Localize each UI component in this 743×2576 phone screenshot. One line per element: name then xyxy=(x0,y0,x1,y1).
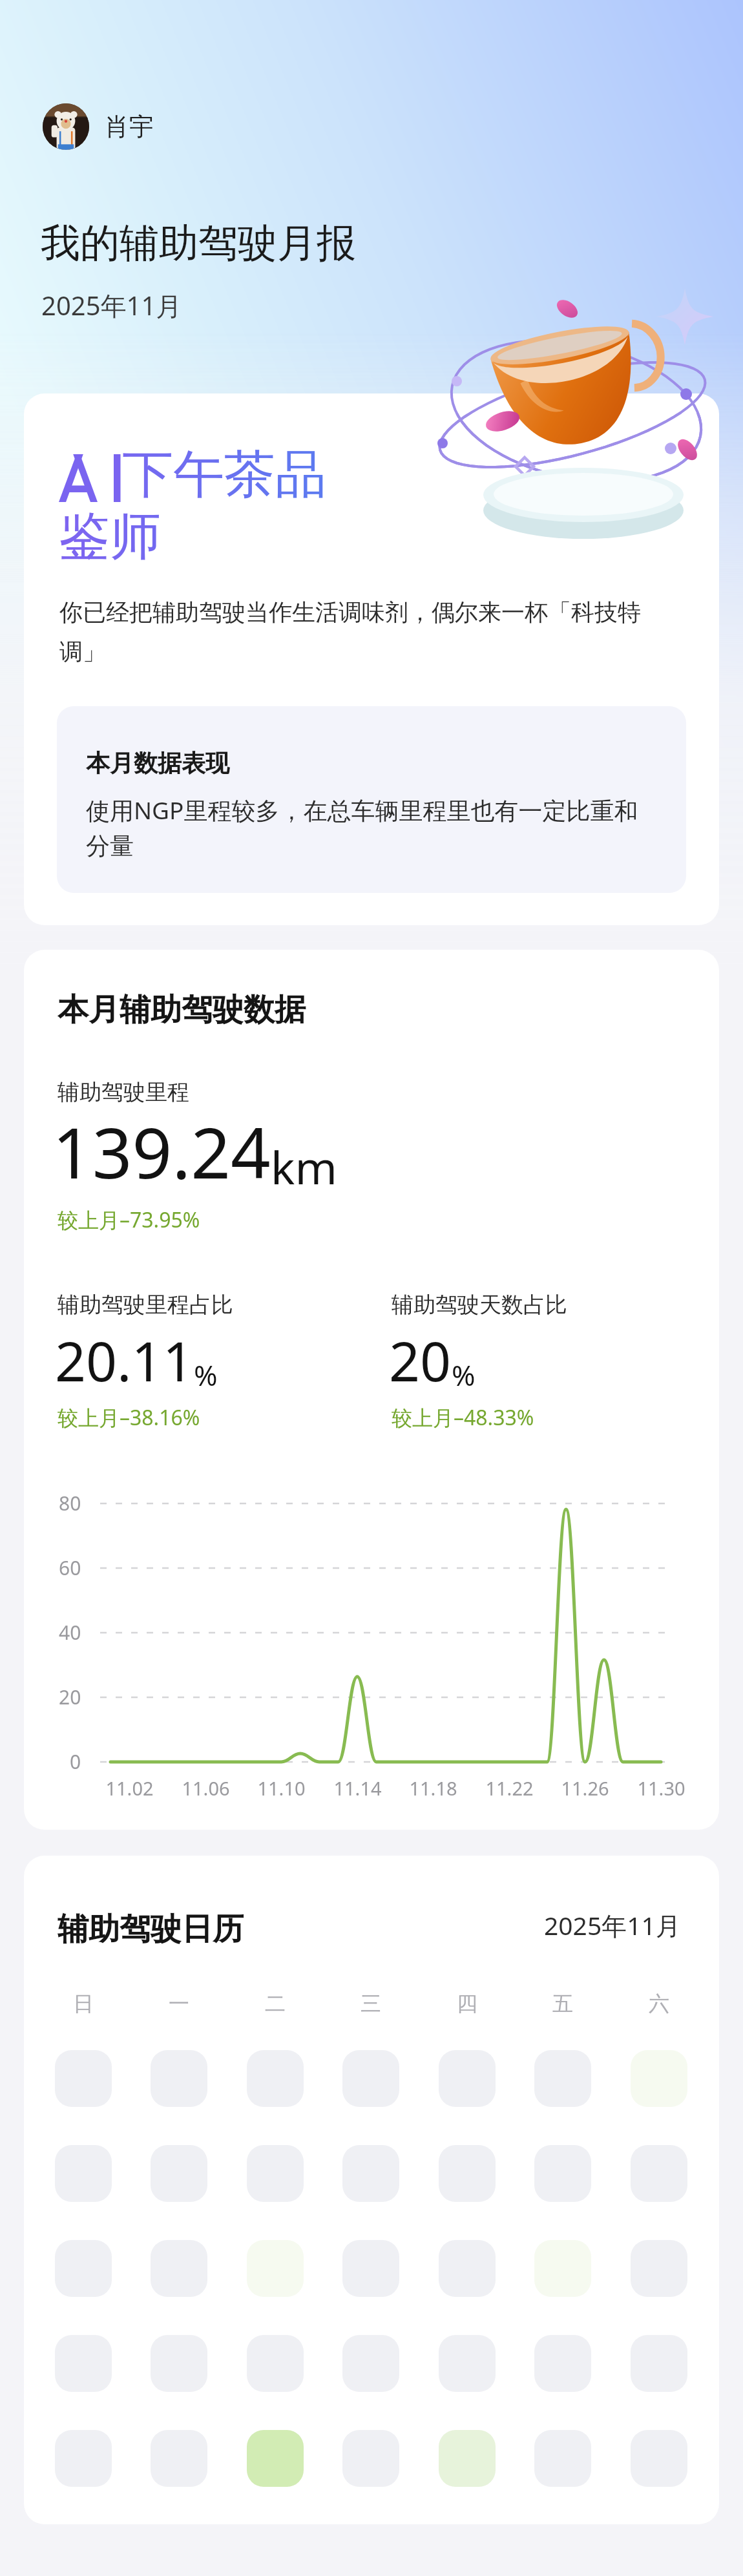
staticText: 三 xyxy=(361,1991,381,2016)
button[interactable]: 肖宇 xyxy=(43,103,154,150)
staticText: 2025年11月 xyxy=(544,1908,681,1942)
staticText: 我的辅助驾驶月报 xyxy=(41,218,356,268)
button[interactable] xyxy=(631,2335,687,2392)
staticText: 20.11 xyxy=(55,1323,194,1397)
button[interactable] xyxy=(342,2240,399,2297)
staticText: 四 xyxy=(457,1991,477,2016)
staticText: 60 xyxy=(59,1555,81,1581)
staticText: 11.18 xyxy=(409,1775,457,1801)
button[interactable] xyxy=(342,2145,399,2202)
staticText: 11.14 xyxy=(333,1775,382,1801)
button[interactable] xyxy=(534,2050,591,2107)
button[interactable] xyxy=(534,2240,591,2297)
staticText: 20 xyxy=(59,1684,81,1710)
staticText: 鉴师 xyxy=(59,505,161,569)
staticText: 11.30 xyxy=(637,1775,685,1801)
button[interactable] xyxy=(534,2430,591,2487)
button[interactable] xyxy=(151,2050,207,2107)
staticText: 较上月–73.95% xyxy=(58,1206,200,1234)
button[interactable] xyxy=(342,2430,399,2487)
button[interactable] xyxy=(631,2240,687,2297)
button[interactable] xyxy=(247,2335,304,2392)
button[interactable] xyxy=(631,2145,687,2202)
button[interactable] xyxy=(439,2430,496,2487)
button[interactable] xyxy=(247,2145,304,2202)
staticText: 较上月–38.16% xyxy=(58,1403,200,1432)
button[interactable] xyxy=(247,2430,304,2487)
staticText: 辅助驾驶日历 xyxy=(58,1910,244,1949)
staticText: 2025年11月 xyxy=(41,288,182,323)
staticText: 五 xyxy=(552,1991,573,2016)
staticText: 下午茶品 xyxy=(122,443,326,507)
button[interactable] xyxy=(55,2145,112,2202)
staticText: 二 xyxy=(265,1991,286,2016)
staticText: 你已经把辅助驾驶当作生活调味剂，偶尔来一杯「科技特调」 xyxy=(59,598,660,666)
button[interactable] xyxy=(439,2240,496,2297)
button[interactable] xyxy=(631,2050,687,2107)
button[interactable] xyxy=(247,2050,304,2107)
staticText: 一 xyxy=(169,1991,189,2016)
button[interactable] xyxy=(55,2335,112,2392)
staticText: 11.22 xyxy=(485,1775,534,1801)
staticText: 六 xyxy=(649,1991,669,2016)
staticText: 40 xyxy=(59,1619,81,1646)
staticText: 139.24 xyxy=(52,1104,271,1199)
button[interactable] xyxy=(151,2430,207,2487)
button[interactable] xyxy=(55,2240,112,2297)
staticText: 辅助驾驶里程占比 xyxy=(58,1291,233,1319)
staticText: 使用NGP里程较多，在总车辆里程里也有一定比重和分量 xyxy=(86,793,652,861)
button[interactable] xyxy=(631,2430,687,2487)
staticText: 辅助驾驶里程 xyxy=(58,1078,189,1106)
staticText: 11.06 xyxy=(182,1775,230,1801)
staticText: 日 xyxy=(73,1991,94,2016)
button[interactable] xyxy=(151,2145,207,2202)
staticText: 11.26 xyxy=(561,1775,609,1801)
staticText: 肖宇 xyxy=(105,111,154,142)
staticText: 80 xyxy=(59,1490,81,1516)
staticText: 20 xyxy=(389,1323,452,1397)
button[interactable] xyxy=(151,2335,207,2392)
button[interactable] xyxy=(534,2335,591,2392)
button[interactable] xyxy=(55,2430,112,2487)
staticText: % xyxy=(452,1356,476,1394)
staticText: 本月辅助驾驶数据 xyxy=(58,990,306,1029)
staticText: 0 xyxy=(70,1748,81,1775)
staticText: km xyxy=(271,1136,337,1197)
staticText: 11.02 xyxy=(105,1775,154,1801)
button[interactable] xyxy=(342,2335,399,2392)
button[interactable] xyxy=(534,2145,591,2202)
button[interactable] xyxy=(151,2240,207,2297)
button[interactable] xyxy=(55,2050,112,2107)
button[interactable] xyxy=(439,2335,496,2392)
button[interactable] xyxy=(247,2240,304,2297)
staticText: % xyxy=(194,1356,218,1394)
button[interactable] xyxy=(342,2050,399,2107)
staticText: 本月数据表现 xyxy=(86,748,229,779)
staticText: 辅助驾驶天数占比 xyxy=(392,1291,567,1319)
staticText: 较上月–48.33% xyxy=(392,1403,534,1432)
button[interactable] xyxy=(439,2145,496,2202)
staticText: 11.10 xyxy=(257,1775,306,1801)
button[interactable] xyxy=(439,2050,496,2107)
